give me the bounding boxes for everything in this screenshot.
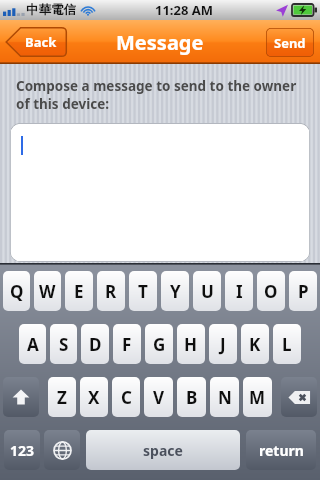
button[interactable]: D bbox=[81, 324, 109, 364]
staticText: J bbox=[220, 333, 226, 356]
staticText: Q bbox=[10, 280, 24, 303]
staticText: S bbox=[59, 333, 69, 356]
button[interactable]: Change keyboard bbox=[44, 430, 80, 470]
button[interactable]: Z bbox=[48, 377, 76, 417]
button[interactable]: A bbox=[19, 324, 46, 364]
staticText: H bbox=[184, 333, 198, 356]
staticText: U bbox=[201, 280, 214, 303]
staticText: return bbox=[259, 441, 304, 460]
staticText: 11:28 AM bbox=[155, 1, 214, 19]
button[interactable]: Shift bbox=[3, 377, 39, 417]
staticText: B bbox=[186, 386, 198, 409]
button[interactable]: Back bbox=[5, 27, 67, 57]
staticText: K bbox=[249, 333, 261, 356]
staticText: D bbox=[89, 333, 102, 356]
button[interactable]: C bbox=[112, 377, 140, 417]
staticText: Z bbox=[57, 386, 67, 409]
button[interactable]: return bbox=[246, 430, 316, 470]
staticText: X bbox=[88, 386, 100, 409]
staticText: M bbox=[249, 386, 266, 409]
staticText: Y bbox=[170, 280, 181, 303]
staticText: P bbox=[298, 280, 309, 303]
button[interactable]: Q bbox=[3, 271, 30, 311]
staticText: Back bbox=[25, 33, 57, 51]
button[interactable]: J bbox=[209, 324, 237, 364]
staticText: Send bbox=[274, 34, 306, 52]
staticText: W bbox=[39, 280, 56, 303]
button[interactable]: Send bbox=[266, 28, 314, 57]
staticText: O bbox=[264, 280, 278, 303]
button[interactable]: L bbox=[273, 324, 301, 364]
staticText: Message bbox=[116, 29, 204, 56]
button[interactable]: Backspace bbox=[281, 377, 317, 417]
button[interactable]: S bbox=[50, 324, 77, 364]
staticText: A bbox=[27, 333, 39, 356]
button[interactable]: I bbox=[225, 271, 253, 311]
button[interactable]: Y bbox=[161, 271, 189, 311]
button[interactable]: V bbox=[144, 377, 173, 417]
staticText: 123 bbox=[10, 441, 35, 460]
button[interactable]: G bbox=[145, 324, 173, 364]
staticText: T bbox=[138, 280, 148, 303]
button[interactable]: U bbox=[193, 271, 221, 311]
staticText: I bbox=[236, 280, 243, 303]
button[interactable]: E bbox=[65, 271, 93, 311]
staticText: G bbox=[153, 333, 166, 356]
staticText: C bbox=[121, 386, 132, 409]
button[interactable]: O bbox=[257, 271, 285, 311]
button[interactable]: K bbox=[241, 324, 269, 364]
button[interactable]: F bbox=[113, 324, 141, 364]
staticText: space bbox=[143, 441, 183, 460]
staticText: F bbox=[122, 333, 132, 356]
button[interactable]: space bbox=[86, 430, 240, 470]
button[interactable]: B bbox=[177, 377, 206, 417]
button[interactable]: P bbox=[289, 271, 317, 311]
staticText: 中華電信 bbox=[26, 2, 76, 18]
staticText: L bbox=[282, 333, 292, 356]
staticText: N bbox=[218, 386, 232, 409]
button[interactable]: X bbox=[80, 377, 108, 417]
button[interactable]: W bbox=[34, 271, 61, 311]
button[interactable]: N bbox=[210, 377, 239, 417]
staticText: E bbox=[74, 280, 84, 303]
staticText: V bbox=[153, 386, 165, 409]
staticText: R bbox=[105, 280, 117, 303]
button[interactable]: R bbox=[97, 271, 125, 311]
button[interactable]: 123 bbox=[4, 430, 40, 470]
button[interactable]: M bbox=[243, 377, 272, 417]
button[interactable] bbox=[10, 123, 310, 262]
staticText: Compose a message to send to the owner o… bbox=[16, 77, 297, 113]
button[interactable]: H bbox=[177, 324, 205, 364]
button[interactable]: T bbox=[129, 271, 157, 311]
